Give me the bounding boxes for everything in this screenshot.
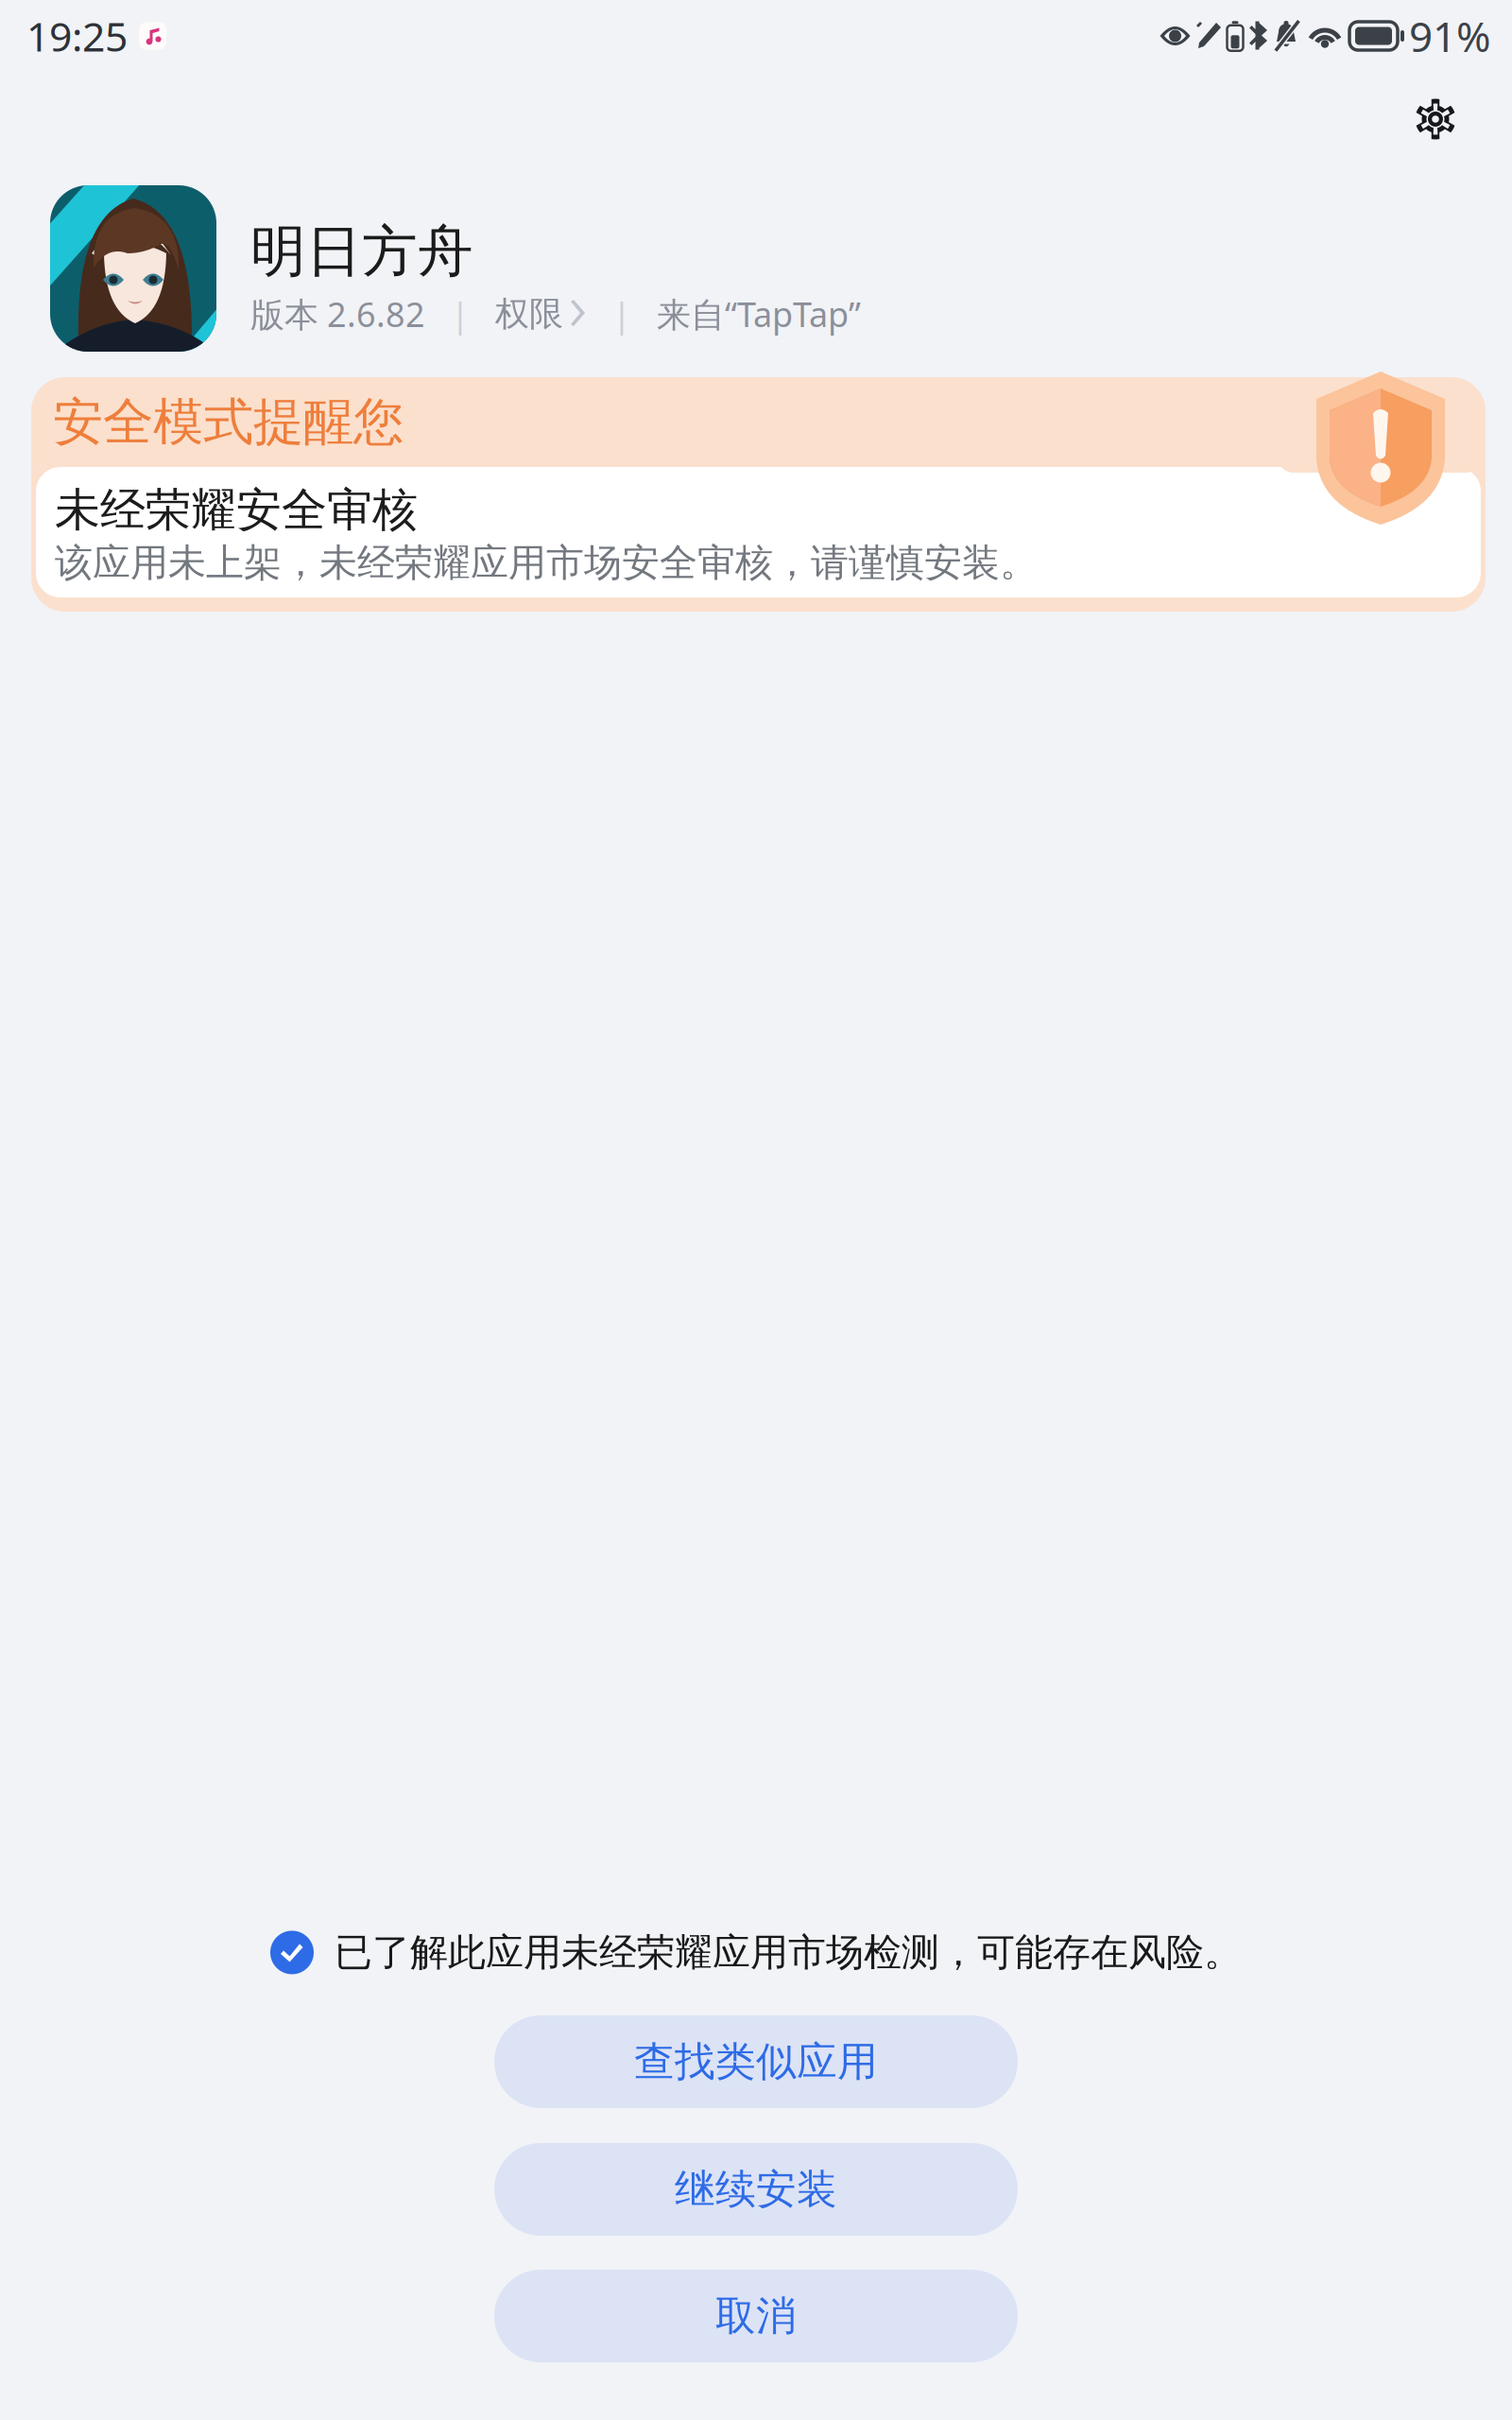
- staticText: |: [425, 291, 495, 336]
- staticText: 安全模式提醒您: [53, 391, 404, 453]
- staticText: 已了解此应用未经荣耀应用市场检测，可能存在风险。: [335, 1929, 1242, 1976]
- staticText: 来自“TapTap”: [657, 291, 861, 336]
- button[interactable]: 权限: [495, 293, 587, 335]
- staticText: 版本 2.6.82: [250, 291, 425, 336]
- staticText: 该应用未上架，未经荣耀应用市场安全审核，请谨慎安装。: [55, 540, 1038, 586]
- staticText: 未经荣耀安全审核: [55, 482, 418, 538]
- button[interactable]: 查找类似应用: [494, 2015, 1018, 2108]
- staticText: 取消: [715, 2291, 797, 2341]
- staticText: 权限: [495, 293, 563, 335]
- staticText: 查找类似应用: [634, 2037, 878, 2086]
- button[interactable]: 继续安装: [494, 2143, 1018, 2236]
- staticText: 继续安装: [675, 2165, 837, 2214]
- staticText: |: [587, 291, 657, 336]
- staticText: 明日方舟: [250, 218, 473, 286]
- staticText: 91%: [1409, 8, 1491, 64]
- staticText: 19:25: [26, 9, 128, 63]
- button[interactable]: 已了解此应用未经荣耀应用市场检测，可能存在风险。: [270, 1929, 1242, 1976]
- button[interactable]: Settings: [1394, 78, 1477, 161]
- button[interactable]: 取消: [494, 2270, 1018, 2362]
